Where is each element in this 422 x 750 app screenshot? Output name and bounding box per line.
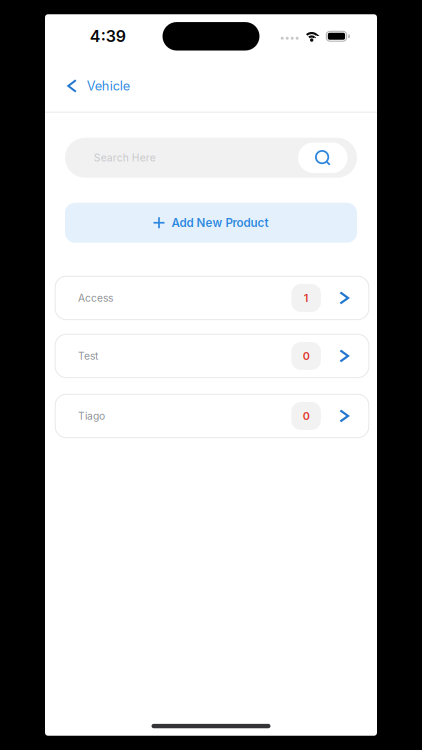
staticText: Test — [78, 350, 98, 362]
staticText: Access — [78, 292, 113, 304]
staticText: Add New Product — [171, 216, 268, 230]
button[interactable]: Test — [55, 334, 369, 378]
button[interactable]: Back — [68, 71, 130, 101]
button[interactable]: Search — [298, 142, 347, 173]
button[interactable]: Add New Product — [65, 203, 357, 243]
staticText: 0 — [303, 410, 310, 422]
button[interactable]: Tiago — [55, 394, 369, 438]
staticText: 0 — [303, 350, 310, 362]
staticText: 1 — [304, 292, 309, 304]
staticText: 4:39 — [90, 27, 126, 46]
button[interactable]: Access — [55, 276, 369, 320]
staticText: Search Here — [94, 152, 156, 164]
staticText: Tiago — [78, 410, 105, 422]
staticText: Vehicle — [87, 78, 130, 93]
